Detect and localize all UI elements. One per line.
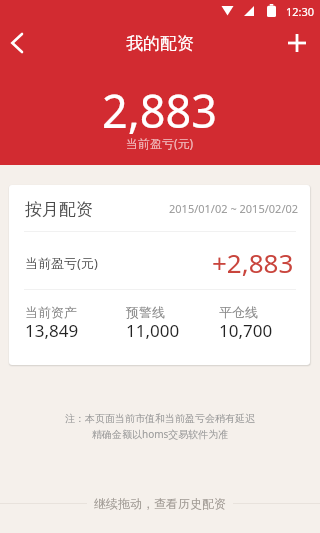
staticText: 当前资产 xyxy=(25,304,77,320)
staticText: 11,000 xyxy=(126,319,180,342)
staticText: 12:30 xyxy=(286,4,315,19)
staticText: 按月配资 xyxy=(25,199,93,220)
staticText: 我的配资 xyxy=(126,33,194,54)
staticText: 当前盈亏(元) xyxy=(25,254,98,272)
staticText: 注：本页面当前市值和当前盈亏会稍有延迟 xyxy=(65,412,255,425)
staticText: +2,883 xyxy=(212,245,294,280)
staticText: 精确金额以homs交易软件为准 xyxy=(92,427,229,441)
staticText: 当前盈亏(元) xyxy=(126,135,194,151)
button[interactable]: 按月配资 xyxy=(9,185,310,365)
staticText: 2015/01/02 ~ 2015/02/02 xyxy=(169,201,299,216)
staticText: 继续拖动，查看历史配资 xyxy=(94,496,226,511)
button[interactable]: Back xyxy=(0,22,44,64)
staticText: 10,700 xyxy=(219,319,273,342)
staticText: 平仓线 xyxy=(219,304,258,320)
staticText: 13,849 xyxy=(25,319,79,342)
staticText: 预警线 xyxy=(126,304,165,320)
staticText: 2,883 xyxy=(102,80,218,141)
button[interactable]: Add xyxy=(276,22,320,64)
